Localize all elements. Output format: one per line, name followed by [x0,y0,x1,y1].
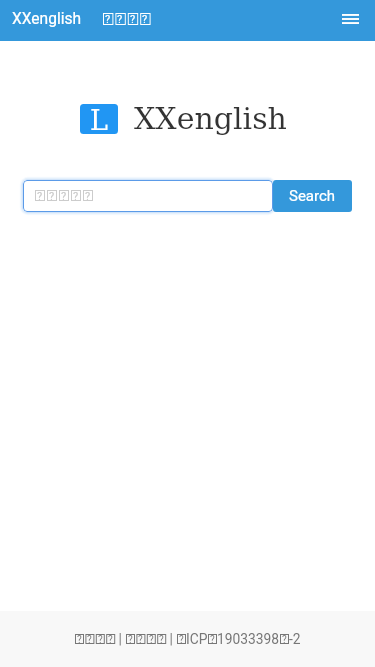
staticText: | [166,631,177,647]
staticText: L [90,105,108,134]
button[interactable]: L [80,101,287,136]
staticText: ? [149,634,154,644]
staticText: ? [128,634,133,644]
staticText: ICP [186,631,208,647]
staticText: ? [73,190,79,201]
staticText: 19033398 [217,631,280,647]
staticText: ? [87,634,92,644]
button[interactable]: XXenglish [0,10,88,28]
staticText: ? [108,634,113,644]
button[interactable]: ? [23,180,273,212]
button[interactable]: ? [103,13,151,25]
staticText: ? [130,13,136,25]
button[interactable]: ? [126,634,166,644]
staticText: | [115,631,126,647]
staticText: ? [159,634,164,644]
button[interactable]: Search [273,180,352,212]
staticText: ? [179,634,184,644]
staticText: ? [282,634,287,644]
staticText: ? [61,190,67,201]
staticText: Search [289,187,336,205]
staticText: ? [105,13,111,25]
button[interactable]: ? [75,634,115,644]
button[interactable]: Menu [333,2,367,36]
staticText: ? [210,634,215,644]
staticText: ? [98,634,103,644]
staticText: XXenglish [134,101,287,136]
staticText: ? [49,190,55,201]
staticText: ? [37,190,43,201]
staticText: ? [138,634,143,644]
button[interactable]: ? [177,631,301,647]
staticText: ? [85,190,91,201]
staticText: ? [117,13,123,25]
staticText: ? [142,13,148,25]
staticText: -2 [289,631,301,647]
staticText: ? [77,634,82,644]
